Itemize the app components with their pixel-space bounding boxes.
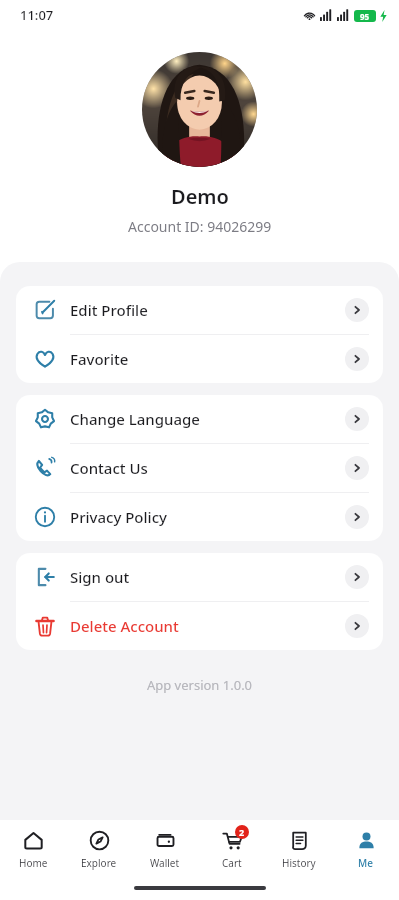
button[interactable]: Sign out [16,553,383,601]
button[interactable]: Delete Account [16,602,383,650]
staticText: Home [19,856,48,870]
button[interactable]: Privacy Policy [16,493,383,541]
button[interactable]: Edit Profile [16,286,383,334]
button[interactable]: Explore [66,824,132,873]
other: Wallet [155,830,176,851]
staticText: Wallet [150,856,180,870]
staticText: 95 [360,11,370,22]
staticText: Change Language [70,409,345,429]
button[interactable]: Me [332,824,399,873]
button[interactable]: History [265,824,332,873]
button[interactable]: Contact Us [16,444,383,492]
button[interactable]: Wallet [132,824,198,873]
button[interactable]: Favorite [16,335,383,383]
staticText: Cart [222,856,242,870]
other: Explore [89,830,110,851]
button[interactable]: Change Language [16,395,383,443]
staticText: Demo [171,183,229,210]
staticText: Me [358,856,373,870]
staticText: History [282,856,316,870]
other: History [289,830,310,851]
staticText: Account ID: 94026299 [128,217,272,236]
other: Cart [222,830,243,851]
staticText: App version 1.0.0 [0,676,399,694]
staticText: Sign out [70,567,345,587]
button[interactable]: Cart [198,824,265,873]
staticText: Delete Account [70,616,345,636]
other: Home [23,830,44,851]
staticText: Edit Profile [70,300,345,320]
staticText: Contact Us [70,458,345,478]
staticText: 2 [239,826,245,838]
staticText: Privacy Policy [70,507,345,527]
button[interactable]: Home [0,824,66,873]
staticText: Favorite [70,349,345,369]
staticText: Explore [81,856,117,870]
other: Me [356,830,377,851]
staticText: 11:07 [20,6,54,24]
